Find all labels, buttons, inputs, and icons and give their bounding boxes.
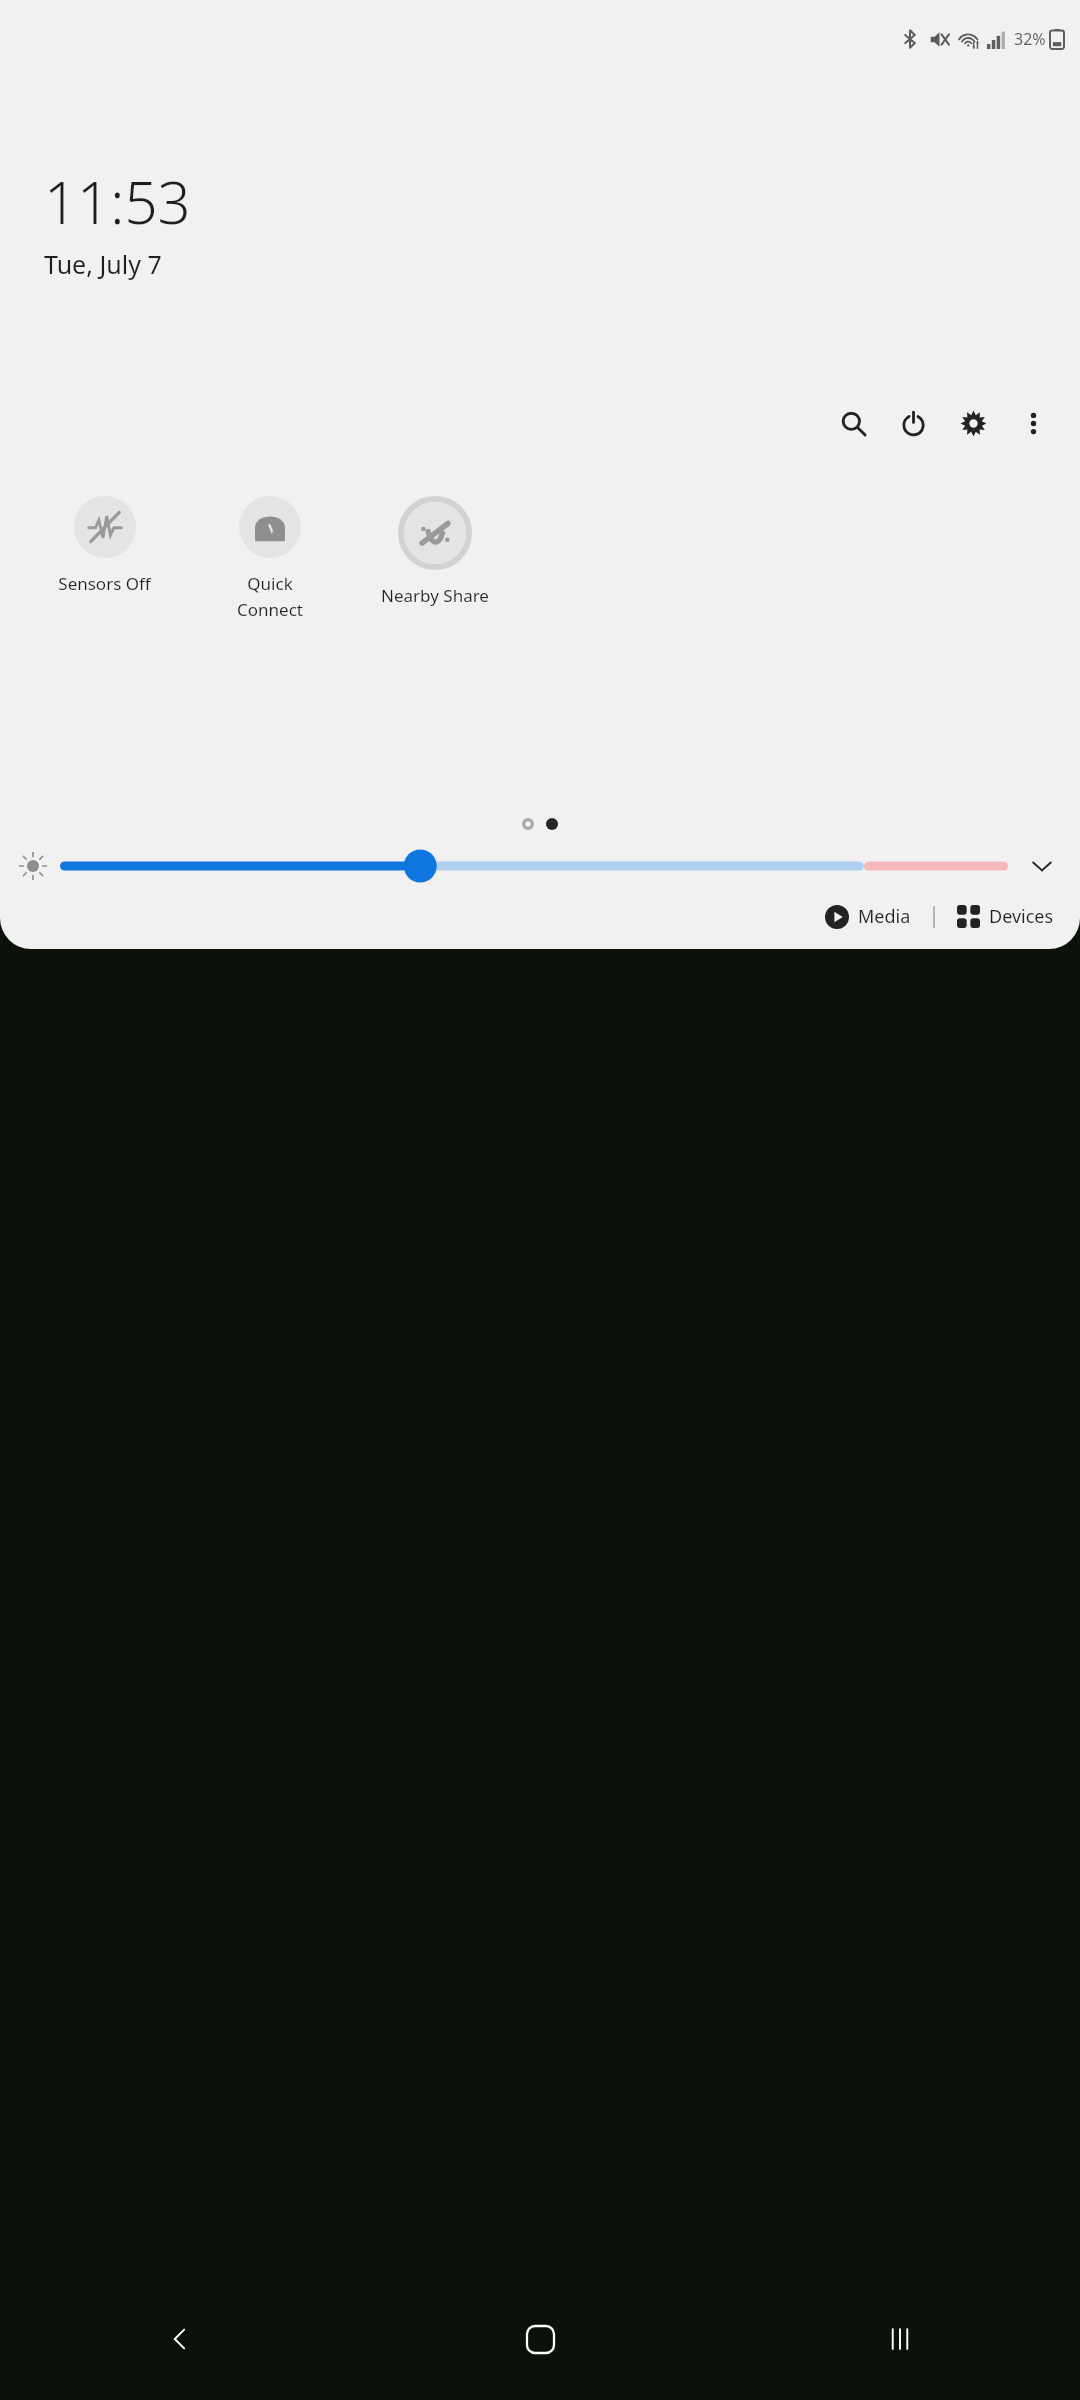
staticText: Tue, July 7 xyxy=(44,247,162,281)
button[interactable]: Settings xyxy=(950,400,996,446)
button[interactable]: Sensors Off xyxy=(22,492,187,595)
button[interactable]: Quick Connect xyxy=(187,492,352,621)
button[interactable]: Search xyxy=(830,400,876,446)
button[interactable]: Home xyxy=(360,2278,720,2400)
button[interactable]: Media xyxy=(817,898,919,935)
button[interactable]: Power off xyxy=(890,400,936,446)
button[interactable]: Back xyxy=(0,2278,360,2400)
button[interactable]: Devices xyxy=(949,898,1062,935)
staticText: Devices xyxy=(989,904,1054,929)
button[interactable]: Expand brightness xyxy=(1022,846,1062,886)
button[interactable]: More options xyxy=(1010,400,1056,446)
staticText: Sensors Off xyxy=(58,572,151,595)
button[interactable]: Nearby Share xyxy=(352,492,517,607)
staticText: Nearby Share xyxy=(381,584,489,607)
staticText: Quick Connect xyxy=(237,572,303,621)
staticText: 11:53 xyxy=(44,162,191,241)
button[interactable]: Recent apps xyxy=(720,2278,1080,2400)
staticText: Media xyxy=(858,904,911,929)
staticText: 32% xyxy=(1014,28,1046,50)
